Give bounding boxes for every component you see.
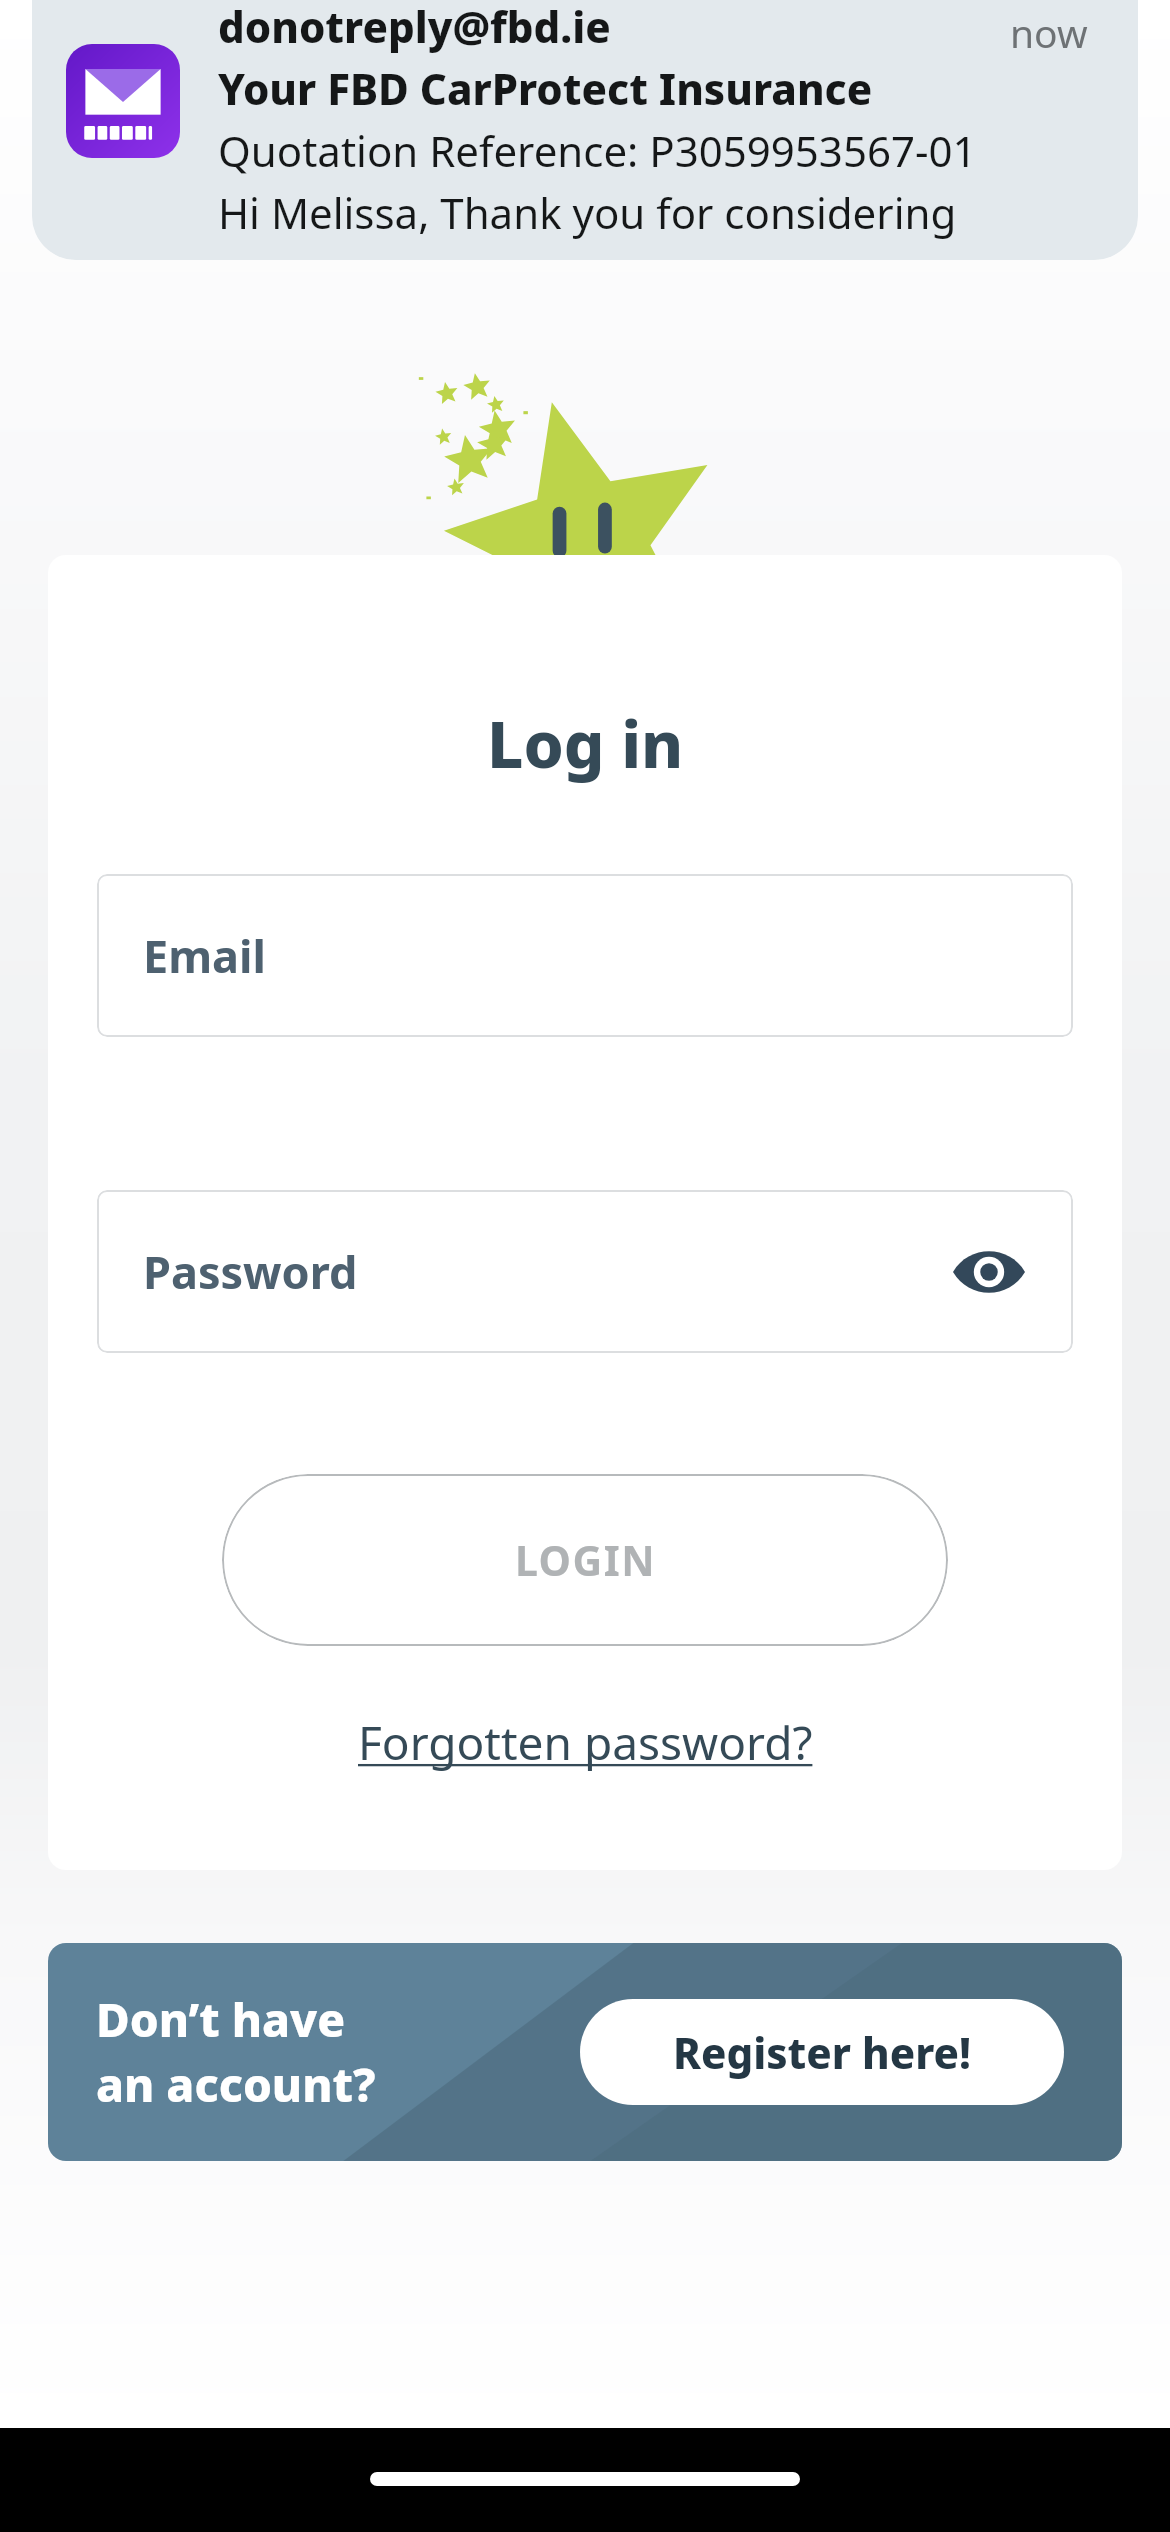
button[interactable]: Show password xyxy=(939,1222,1039,1322)
staticText: Quotation Reference: P3059953567-01 xyxy=(218,122,977,179)
staticText: an account? xyxy=(96,2053,376,2116)
staticText: Log in xyxy=(487,700,684,787)
staticText: now xyxy=(1010,6,1088,59)
staticText: Hi Melissa, Thank you for considering F… xyxy=(218,184,978,241)
staticText: Don’t have xyxy=(96,1988,346,2051)
button[interactable]: Don’t have xyxy=(48,1943,1122,2161)
button[interactable]: Forgotten password? xyxy=(348,1705,823,1780)
button[interactable]: Password xyxy=(97,1190,1073,1353)
staticText: Your FBD CarProtect Insurance quot… xyxy=(218,60,978,117)
staticText: LOGIN xyxy=(515,1532,656,1588)
staticText: Forgotten password? xyxy=(358,1711,813,1774)
staticText: donotreply@fbd.ie xyxy=(218,0,611,55)
button[interactable]: LOGIN xyxy=(222,1474,948,1646)
button[interactable]: Email xyxy=(97,874,1073,1037)
button[interactable]: donotreply@fbd.ie xyxy=(32,0,1138,260)
staticText: Register here! xyxy=(673,2024,971,2081)
staticText: Email xyxy=(143,925,266,986)
staticText: Password xyxy=(143,1241,358,1302)
button[interactable]: Register here! xyxy=(580,1999,1064,2105)
